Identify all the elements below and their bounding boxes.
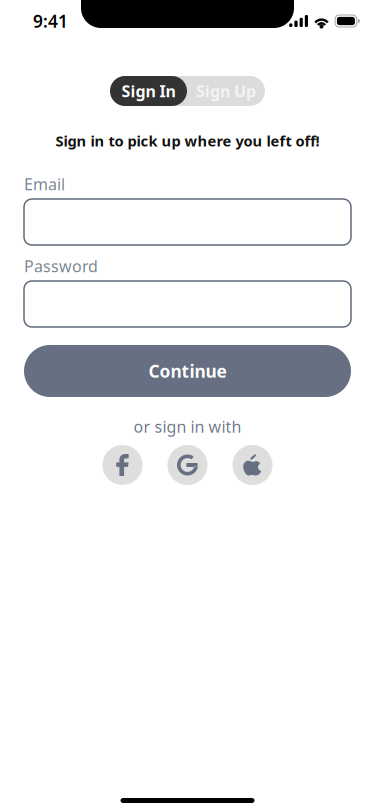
staticText: Sign Up: [196, 80, 256, 102]
staticText: Sign in to pick up where you left off!: [55, 131, 319, 150]
button[interactable]: Sign Up: [187, 76, 265, 106]
button[interactable]: [24, 281, 351, 327]
staticText: Sign In: [121, 80, 175, 102]
button[interactable]: [24, 199, 351, 245]
staticText: Email: [24, 173, 65, 195]
button[interactable]: Sign in with Apple: [232, 445, 272, 485]
staticText: 9:41: [33, 9, 68, 32]
button[interactable]: Sign In: [110, 76, 187, 106]
staticText: Password: [24, 255, 98, 277]
button[interactable]: Sign in with Facebook: [102, 445, 142, 485]
button[interactable]: Continue: [24, 345, 351, 397]
staticText: or sign in with: [133, 416, 241, 437]
staticText: Continue: [148, 359, 226, 382]
button[interactable]: Sign in with Google: [167, 445, 207, 485]
